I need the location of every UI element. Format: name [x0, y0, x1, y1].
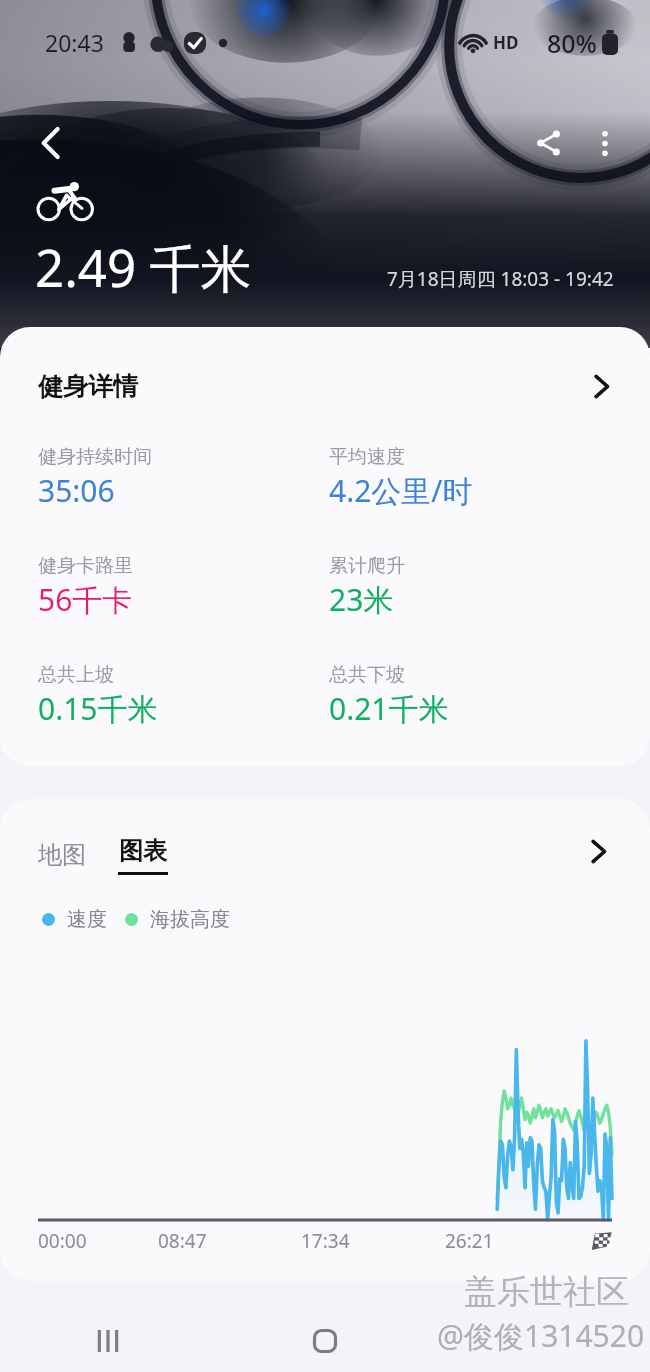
staticText: 17:34	[301, 1228, 350, 1254]
staticText: 0.15千米	[38, 688, 158, 729]
button[interactable]: Back	[20, 113, 80, 173]
staticText: @俊俊1314520	[437, 1315, 645, 1356]
button[interactable]: Recent apps	[0, 1310, 216, 1372]
staticText: 4.2公里/时	[329, 470, 473, 511]
staticText: 速度	[67, 907, 107, 932]
staticText: 2.49 千米	[35, 232, 252, 302]
staticText: 累计爬升	[329, 554, 405, 578]
staticText: 08:47	[158, 1228, 207, 1254]
staticText: 健身详情	[38, 371, 138, 402]
staticText: 23米	[329, 579, 394, 620]
staticText: 盖乐世社区	[464, 1271, 629, 1313]
staticText: 地图	[38, 840, 86, 870]
staticText: HD	[493, 31, 519, 54]
staticText: 健身卡路里	[38, 554, 133, 578]
staticText: 20:43	[45, 27, 104, 58]
staticText: 0.21千米	[329, 688, 449, 729]
button[interactable]: 图表	[118, 836, 168, 875]
staticText: 总共下坡	[329, 663, 405, 687]
button[interactable]: Share	[519, 114, 577, 172]
button[interactable]: 健身详情	[0, 327, 650, 445]
staticText: 平均速度	[329, 445, 405, 469]
staticText: 80%	[547, 26, 597, 60]
staticText: 总共上坡	[38, 663, 114, 687]
staticText: 35:06	[38, 470, 115, 511]
staticText: 海拔高度	[150, 907, 230, 932]
button[interactable]: Home	[216, 1310, 433, 1372]
staticText: 图表	[119, 836, 167, 866]
button[interactable]: Open chart	[584, 836, 614, 866]
staticText: 健身持续时间	[38, 445, 152, 469]
button[interactable]: 地图	[38, 832, 86, 878]
button[interactable]: Back	[433, 1310, 650, 1372]
staticText: 26:21	[445, 1228, 494, 1254]
staticText: 56千卡	[38, 579, 133, 620]
staticText: 00:00	[38, 1228, 87, 1254]
staticText: 7月18日周四 18:03 - 19:42	[387, 266, 614, 292]
button[interactable]: More options	[577, 115, 633, 171]
